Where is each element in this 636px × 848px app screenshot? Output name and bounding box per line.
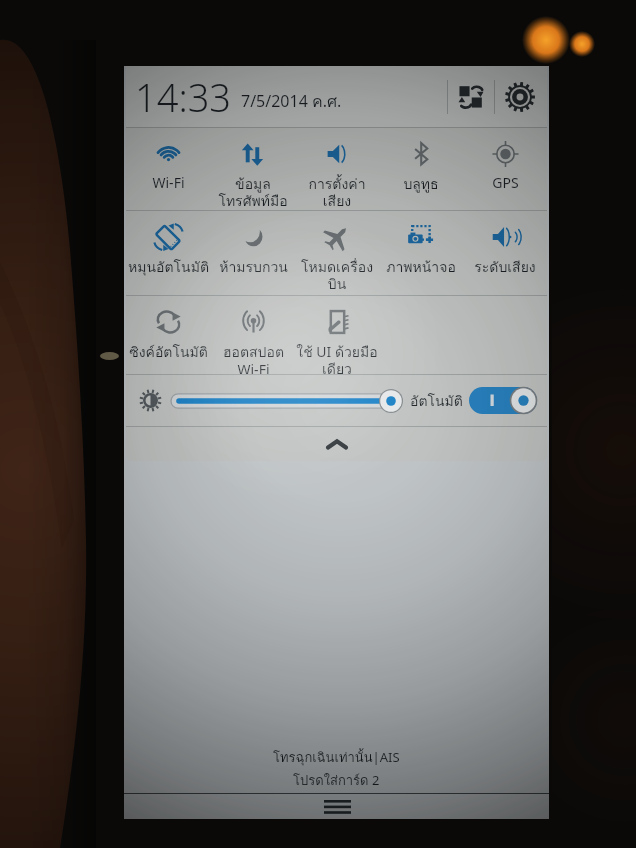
button[interactable]: ซิงค์อัตโนมัติ <box>126 296 211 374</box>
button[interactable]: Menu <box>310 794 364 819</box>
staticText: 7/5/2014 ค.ศ. <box>241 89 342 114</box>
staticText: บลูทูธ <box>403 173 439 195</box>
staticText: อัตโนมัติ <box>410 390 463 412</box>
staticText: ระดับเสียง <box>474 256 536 278</box>
staticText: โทรฉุกเฉินเท่านั้น|AIS <box>273 747 400 768</box>
staticText: หมุนอัตโนมัติ <box>128 256 209 278</box>
button[interactable]: ภาพหน้าจอ <box>379 211 463 295</box>
button[interactable]: Collapse <box>126 427 547 461</box>
staticText: การตั้งค่า เสียง <box>308 173 366 210</box>
button[interactable]: การตั้งค่า เสียง <box>295 128 379 210</box>
staticText: ใช้ UI ด้วยมือ เดียว <box>296 341 378 374</box>
staticText: โหมดเครื่อง บิน <box>301 256 373 295</box>
staticText: ฮอตสปอต Wi-Fi <box>223 341 284 374</box>
button[interactable]: ฮอตสปอต Wi-Fi <box>211 296 295 374</box>
button[interactable]: หมุนอัตโนมัติ <box>126 211 211 295</box>
button[interactable]: ใช้ UI ด้วยมือ เดียว <box>295 296 379 374</box>
button[interactable]: ห้ามรบกวน <box>211 211 295 295</box>
staticText: ข้อมูล โทรศัพท์มือ <box>218 173 288 210</box>
button[interactable]: Settings <box>495 69 545 125</box>
staticText: ซิงค์อัตโนมัติ <box>129 341 208 363</box>
button[interactable]: ข้อมูล โทรศัพท์มือ <box>211 128 295 210</box>
button[interactable]: Auto brightness toggle <box>469 387 537 414</box>
staticText: ภาพหน้าจอ <box>386 256 456 278</box>
button[interactable]: Wi-Fi <box>126 128 211 210</box>
button[interactable]: Switch user <box>448 69 494 125</box>
button[interactable]: Brightness <box>171 389 403 413</box>
button[interactable]: โหมดเครื่อง บิน <box>295 211 379 295</box>
staticText: 14:33 <box>135 71 232 123</box>
staticText: ห้ามรบกวน <box>219 256 288 278</box>
staticText: GPS <box>492 173 519 192</box>
button[interactable]: บลูทูธ <box>379 128 463 210</box>
button[interactable]: ระดับเสียง <box>463 211 547 295</box>
staticText: Wi-Fi <box>152 173 185 192</box>
button[interactable]: GPS <box>463 128 547 210</box>
staticText: โปรดใส่การ์ด 2 <box>293 770 380 791</box>
